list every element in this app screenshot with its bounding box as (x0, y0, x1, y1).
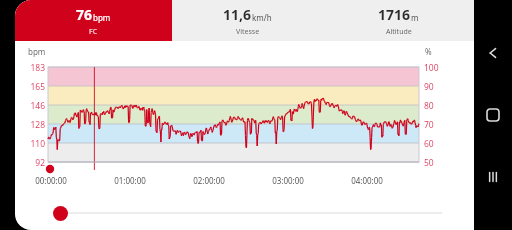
staticText: 04:00:00 (339, 175, 395, 186)
staticText: 00:00:00 (23, 175, 79, 186)
other: Playback position (53, 206, 68, 221)
staticText: 1716 (378, 5, 411, 24)
button[interactable]: Back (476, 36, 510, 70)
staticText: 92 (17, 157, 45, 169)
staticText: bpm (93, 12, 111, 23)
staticText: % (425, 46, 432, 57)
staticText: Altitude (386, 27, 412, 37)
staticText: km/h (252, 12, 272, 23)
button[interactable]: 1716 (323, 0, 474, 41)
staticText: 11,6 (223, 5, 252, 24)
staticText: 50 (424, 157, 454, 169)
staticText: bpm (28, 46, 46, 57)
staticText: 90 (424, 81, 454, 93)
staticText: 146 (17, 100, 45, 112)
staticText: 128 (17, 119, 45, 131)
button[interactable]: 11,6 (172, 0, 323, 41)
staticText: 76 (76, 5, 93, 24)
button[interactable]: Recent apps (476, 160, 510, 194)
staticText: 70 (424, 119, 454, 131)
staticText: 01:00:00 (102, 175, 158, 186)
staticText: 110 (17, 138, 45, 150)
staticText: 80 (424, 100, 454, 112)
staticText: Vitesse (236, 27, 260, 37)
staticText: 165 (17, 81, 45, 93)
button[interactable]: 76 (15, 0, 172, 41)
staticText: FC (89, 27, 98, 37)
staticText: m (411, 12, 419, 23)
staticText: 03:00:00 (260, 175, 316, 186)
staticText: 60 (424, 138, 454, 150)
button[interactable]: Home (476, 98, 510, 132)
button[interactable]: Playback position (15, 196, 474, 230)
staticText: 02:00:00 (181, 175, 237, 186)
staticText: 183 (17, 62, 45, 74)
staticText: 100 (424, 62, 454, 74)
